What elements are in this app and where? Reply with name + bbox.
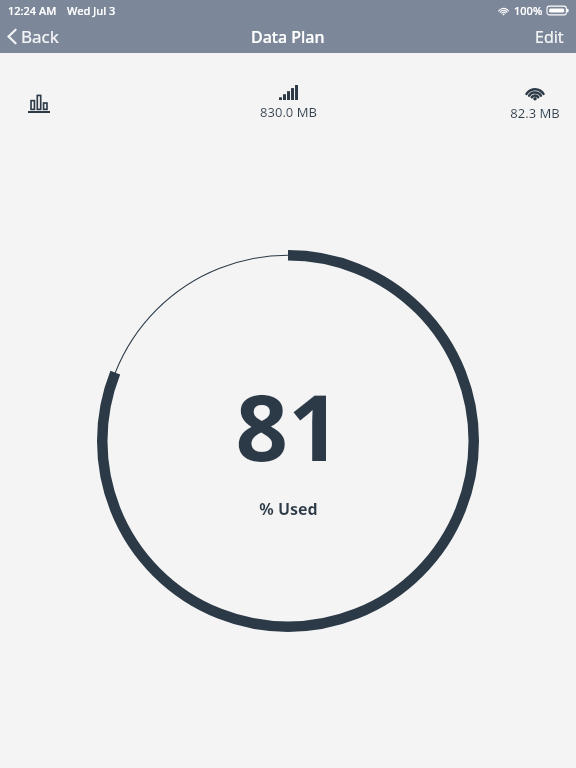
- staticText: Data Plan: [251, 26, 325, 48]
- staticText: Edit: [535, 26, 564, 48]
- staticText: 82.3 MB: [510, 104, 560, 122]
- staticText: % Used: [259, 498, 318, 520]
- button[interactable]: 81 percent of data plan used: [95, 248, 481, 634]
- button[interactable]: Edit: [523, 22, 576, 52]
- staticText: 100%: [514, 3, 543, 18]
- staticText: 81: [235, 363, 341, 488]
- button[interactable]: Usage history chart: [22, 87, 56, 119]
- staticText: 830.0 MB: [260, 103, 317, 121]
- staticText: 12:24 AM: [8, 3, 57, 18]
- staticText: Back: [21, 25, 59, 48]
- button[interactable]: Back: [0, 21, 69, 52]
- staticText: Wed Jul 3: [67, 3, 116, 18]
